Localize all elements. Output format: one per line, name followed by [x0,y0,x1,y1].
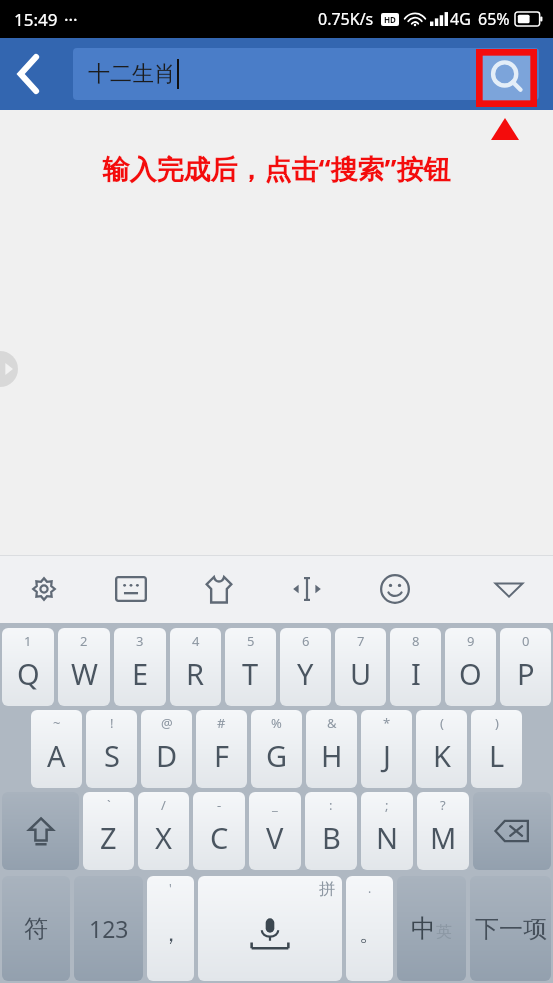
button[interactable]: Cursor [285,567,329,611]
staticText: 65% [478,8,510,30]
staticText: ··· [64,8,78,31]
staticText: 十二生肖 [88,60,176,88]
staticText: 123 [89,913,129,944]
button[interactable]: Open drawer [0,351,18,387]
staticText: 7 [357,632,365,650]
staticText: K [433,736,451,775]
staticText: ? [440,796,446,814]
button[interactable]: Shift [2,792,79,870]
staticText: T [242,654,259,693]
staticText: D [156,736,178,775]
staticText: 15:49 [14,8,58,31]
staticText: 中 [411,913,436,944]
staticText: ( [440,714,444,732]
button[interactable]: Settings [22,567,66,611]
staticText: ; [385,796,389,814]
staticText: P [517,654,535,693]
staticText: ~ [53,714,61,732]
button[interactable]: _ [249,792,301,870]
staticText: F [214,736,230,775]
button[interactable]: ` [83,792,134,870]
staticText: # [217,714,226,732]
staticText: B [322,818,341,857]
staticText: 0 [522,632,530,650]
staticText: 1 [24,632,32,650]
staticText: ， [160,920,182,948]
button[interactable]: 9 [445,628,496,706]
button[interactable]: 十二生肖 [73,48,539,100]
staticText: Z [100,818,117,857]
button[interactable]: 2 [58,628,110,706]
button[interactable]: 8 [390,628,441,706]
staticText: W [71,654,98,693]
staticText: R [186,654,205,693]
button[interactable]: ~ [31,710,82,788]
staticText: 0.75K/s [318,8,374,30]
staticText: ! [110,714,114,732]
staticText: H [321,736,343,775]
staticText: L [489,736,505,775]
staticText: E [132,654,149,693]
staticText: 3 [136,632,144,650]
button[interactable]: / [138,792,189,870]
staticText: 4G [450,8,471,30]
staticText: 英 [436,922,452,942]
button[interactable]: ; [361,792,413,870]
staticText: @ [161,714,173,732]
button[interactable]: Back [0,38,58,110]
button[interactable]: ) [471,710,522,788]
button[interactable]: Space, voice input [198,876,342,981]
staticText: 。 [359,920,381,948]
staticText: ' [169,880,172,896]
button[interactable]: 123 [74,876,143,981]
staticText: 下一项 [475,914,547,944]
button[interactable]: Keyboard layout [109,567,153,611]
staticText: V [266,818,284,857]
button[interactable]: % [251,710,302,788]
staticText: X [155,818,172,857]
button[interactable]: @ [141,710,192,788]
button[interactable]: . [346,876,393,981]
staticText: S [104,736,120,775]
button[interactable]: Search [476,49,537,107]
button[interactable]: 1 [2,628,54,706]
button[interactable]: Hide keyboard [487,567,531,611]
staticText: I [411,654,421,693]
staticText: 符 [24,914,48,944]
button[interactable]: ( [416,710,467,788]
staticText: - [217,796,222,814]
button[interactable]: 6 [280,628,331,706]
staticText: 5 [247,632,255,650]
button[interactable]: - [193,792,245,870]
button[interactable]: Theme [197,567,241,611]
button[interactable]: Emoji [373,567,417,611]
button[interactable]: 7 [335,628,386,706]
button[interactable]: & [306,710,357,788]
button[interactable]: 0 [500,628,551,706]
button[interactable]: * [361,710,412,788]
staticText: % [271,714,282,732]
button[interactable]: Backspace [473,792,551,870]
staticText: HD [384,14,396,25]
staticText: & [327,714,337,732]
staticText: : [329,796,333,814]
staticText: * [383,714,391,732]
staticText: J [383,736,391,775]
button[interactable]: Switch Chinese English [397,876,466,981]
button[interactable]: ! [86,710,137,788]
button[interactable]: 5 [225,628,276,706]
staticText: 9 [467,632,475,650]
staticText: . [368,880,372,896]
staticText: Y [297,654,314,693]
button[interactable]: # [196,710,247,788]
staticText: 8 [412,632,420,650]
button[interactable]: ? [417,792,469,870]
button[interactable]: 符 [2,876,70,981]
button[interactable]: : [305,792,357,870]
staticText: ) [495,714,499,732]
button[interactable]: 下一项 [470,876,551,981]
button[interactable]: 4 [170,628,221,706]
staticText: ` [107,796,111,814]
button[interactable]: ' [147,876,194,981]
button[interactable]: 3 [114,628,166,706]
